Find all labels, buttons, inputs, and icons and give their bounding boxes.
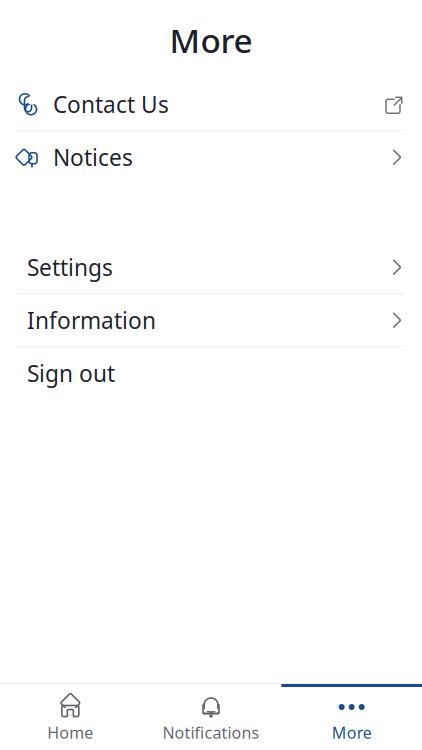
- staticText: More: [169, 18, 252, 62]
- staticText: Notifications: [162, 722, 259, 743]
- staticText: Contact Us: [53, 89, 169, 119]
- staticText: Home: [47, 722, 93, 743]
- staticText: Notices: [53, 142, 133, 172]
- button[interactable]: Notifications: [141, 684, 281, 750]
- staticText: More: [332, 722, 372, 743]
- button[interactable]: Sign out: [0, 347, 422, 399]
- button[interactable]: More: [281, 684, 422, 750]
- button[interactable]: Home: [0, 684, 141, 750]
- button[interactable]: Contact Us: [0, 78, 422, 130]
- button[interactable]: Information: [0, 294, 422, 346]
- staticText: Information: [27, 305, 156, 335]
- staticText: Sign out: [27, 358, 115, 388]
- button[interactable]: Settings: [0, 241, 422, 293]
- staticText: Settings: [27, 252, 113, 282]
- button[interactable]: Notices: [0, 131, 422, 183]
